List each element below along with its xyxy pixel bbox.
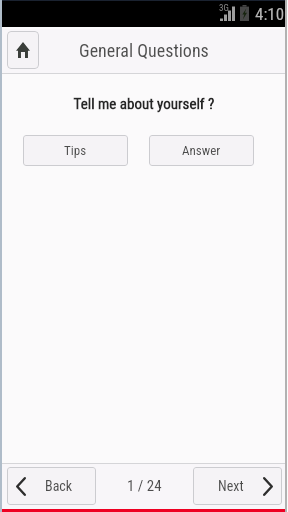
staticText: General Questions <box>79 40 209 61</box>
button[interactable]: Answer <box>149 135 254 166</box>
button[interactable]: Tips <box>23 135 128 166</box>
staticText: Back <box>45 478 73 494</box>
staticText: Tips <box>64 143 87 158</box>
staticText: 3G <box>219 3 229 14</box>
staticText: 4:10 <box>255 4 285 24</box>
button[interactable]: Home <box>7 31 39 69</box>
staticText: 1 / 24 <box>127 477 162 495</box>
button[interactable]: Next <box>193 467 282 505</box>
staticText: Tell me about yourself ? <box>0 95 288 113</box>
staticText: Answer <box>182 143 221 158</box>
button[interactable]: Back <box>7 467 96 505</box>
staticText: Next <box>218 478 244 494</box>
